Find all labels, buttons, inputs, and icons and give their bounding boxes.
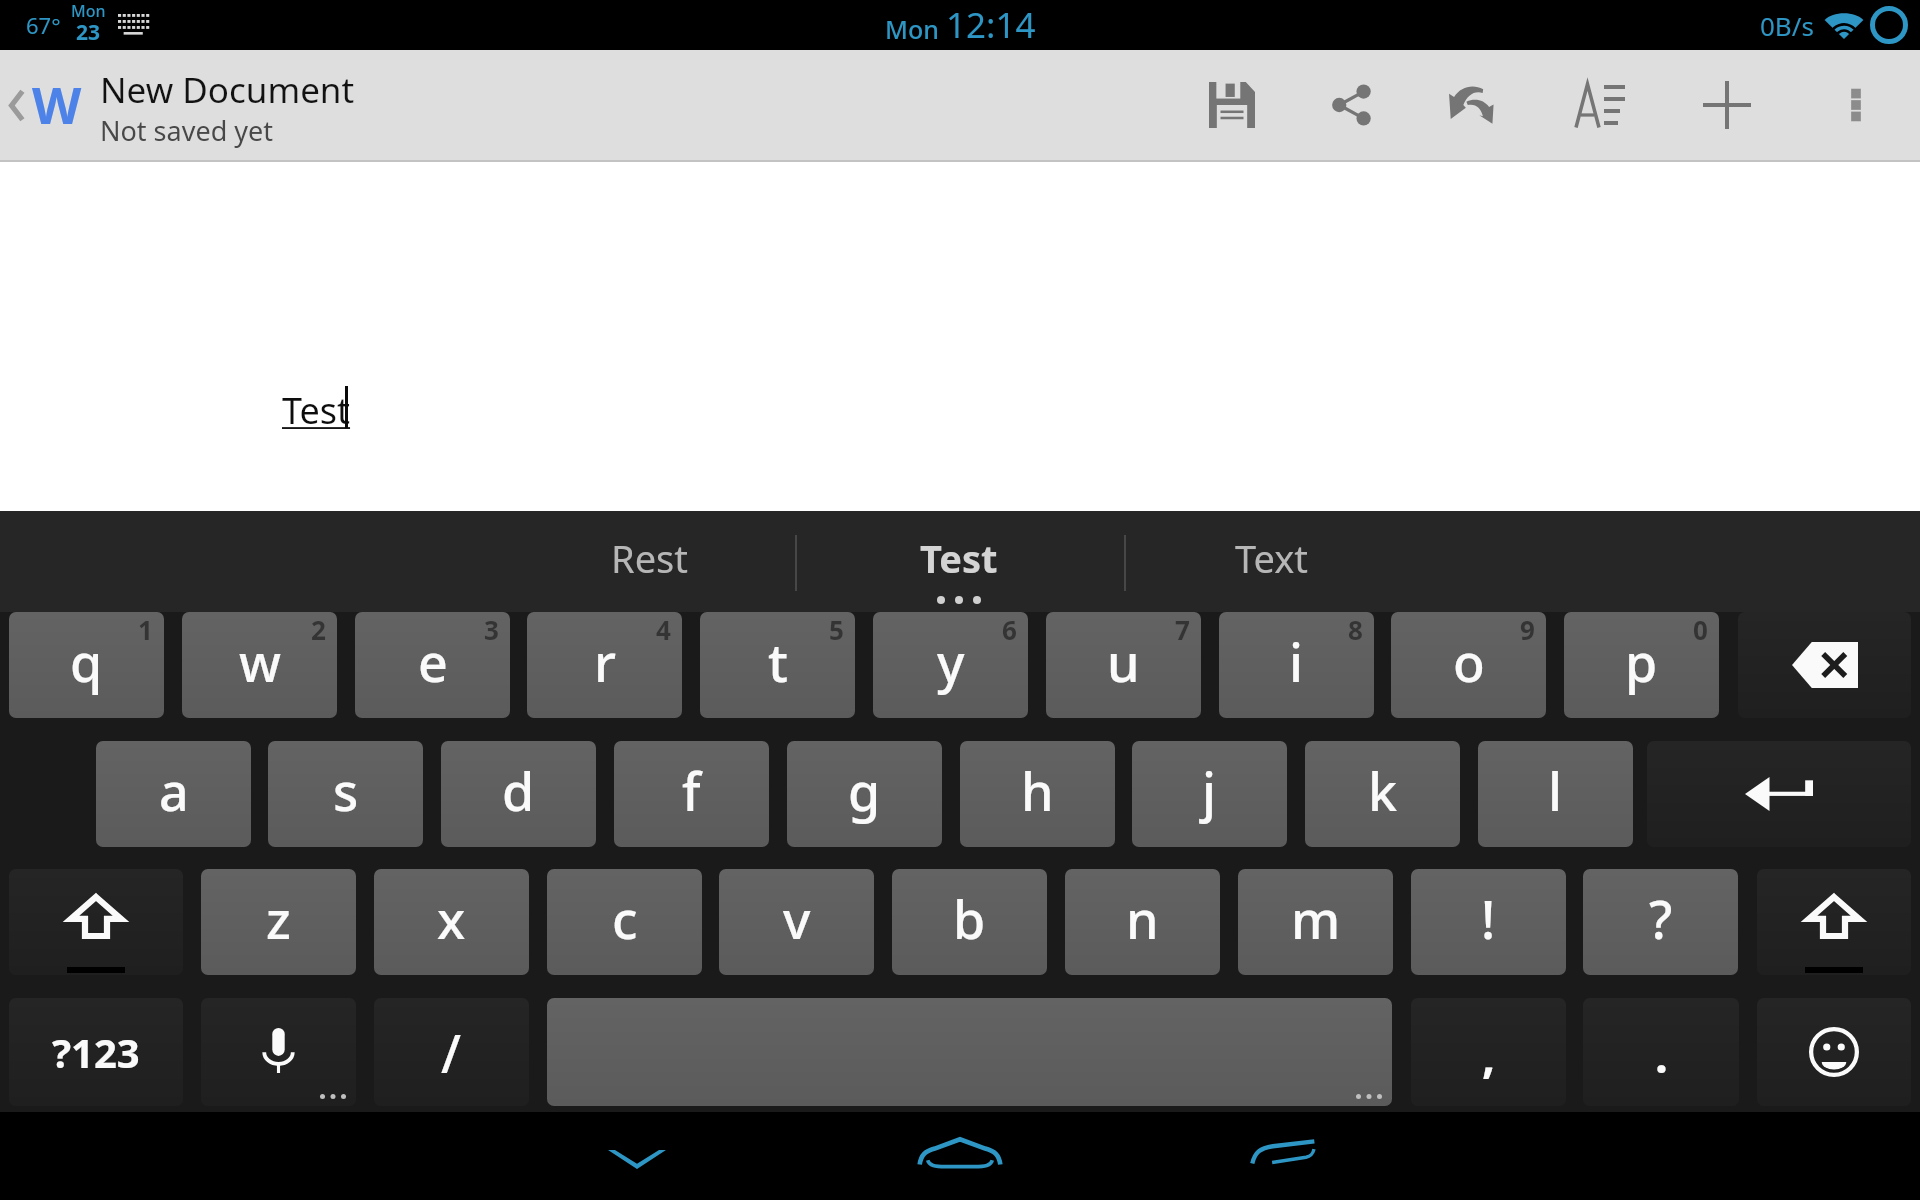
button[interactable]: Enter (1647, 741, 1911, 847)
button[interactable]: ! (1411, 869, 1566, 975)
other: Keyboard active (118, 14, 151, 37)
button[interactable]: Back (0, 50, 32, 160)
button[interactable]: h (960, 741, 1115, 847)
button[interactable]: b (892, 869, 1047, 975)
button[interactable]: a (96, 741, 251, 847)
staticText: ?123 (52, 1025, 140, 1079)
button[interactable]: Shift (9, 869, 183, 975)
button[interactable]: Text formatting (1540, 50, 1660, 160)
staticText: d (502, 755, 535, 826)
staticText: 3 (484, 612, 499, 647)
staticText: w (239, 626, 281, 697)
button[interactable]: Insert (1667, 50, 1787, 160)
staticText: i (1289, 626, 1304, 697)
button[interactable]: Space (547, 998, 1392, 1106)
button[interactable]: Recent apps (1203, 1108, 1363, 1196)
staticText: s (333, 755, 359, 826)
button[interactable]: Comma (1411, 998, 1566, 1106)
button[interactable]: g (787, 741, 942, 847)
button[interactable]: Undo (1412, 50, 1532, 160)
staticText: Test (282, 386, 351, 435)
button[interactable]: Document (32, 50, 82, 160)
button[interactable]: m (1238, 869, 1393, 975)
staticText: Mon (885, 12, 939, 46)
staticText: Mon (71, 0, 106, 22)
button[interactable]: Save (1172, 50, 1292, 160)
staticText: u (1107, 626, 1140, 697)
button[interactable]: c (547, 869, 702, 975)
button[interactable]: w (182, 612, 337, 718)
button[interactable]: Voice input (201, 998, 356, 1106)
staticText: l (1548, 755, 1563, 826)
button[interactable]: Slash (374, 998, 529, 1106)
button[interactable]: Rest (560, 511, 738, 612)
staticText: z (266, 883, 291, 954)
button[interactable]: q (9, 612, 164, 718)
button[interactable]: y (873, 612, 1028, 718)
staticText: f (682, 755, 701, 826)
staticText: x (437, 883, 466, 954)
button[interactable]: Share (1291, 50, 1411, 160)
button[interactable]: k (1305, 741, 1460, 847)
button[interactable]: n (1065, 869, 1220, 975)
button[interactable]: ? (1583, 869, 1738, 975)
button[interactable]: o (1391, 612, 1546, 718)
staticText: j (1202, 755, 1217, 826)
staticText: Text (1235, 532, 1308, 584)
staticText: 6 (1002, 612, 1017, 647)
staticText: 0B/s (1760, 8, 1814, 43)
staticText: q (70, 626, 103, 697)
button[interactable]: p (1564, 612, 1719, 718)
button[interactable]: Text (1182, 511, 1360, 612)
staticText: e (418, 626, 448, 697)
button[interactable]: Document editing area (0, 162, 1920, 511)
button[interactable]: Emoji (1757, 998, 1911, 1106)
staticText: / (441, 1017, 462, 1088)
staticText: . (1655, 1024, 1668, 1087)
staticText: ? (1649, 883, 1673, 954)
button[interactable]: v (719, 869, 874, 975)
button[interactable]: Hide keyboard (557, 1115, 717, 1200)
staticText: 9 (1520, 612, 1535, 647)
button[interactable]: r (527, 612, 682, 718)
staticText: 23 (76, 18, 101, 46)
button[interactable]: s (268, 741, 423, 847)
other: Battery (1870, 6, 1908, 44)
staticText: g (848, 755, 881, 826)
staticText: Rest (611, 532, 688, 584)
staticText: a (159, 755, 189, 826)
other: Wi-Fi (1824, 10, 1864, 40)
button[interactable]: Period (1583, 998, 1739, 1106)
button[interactable]: Shift (1757, 869, 1911, 975)
staticText: 0 (1693, 612, 1708, 647)
button[interactable]: t (700, 612, 855, 718)
staticText: r (594, 626, 616, 697)
staticText: W (32, 69, 82, 138)
button[interactable]: x (374, 869, 529, 975)
button[interactable]: i (1219, 612, 1374, 718)
staticText: , (1482, 1024, 1496, 1087)
button[interactable]: Test (870, 511, 1048, 612)
button[interactable]: f (614, 741, 769, 847)
button[interactable]: New Document (100, 50, 400, 160)
staticText: c (612, 883, 638, 954)
staticText: 67° (26, 10, 61, 40)
staticText: 5 (829, 612, 844, 647)
staticText: n (1126, 883, 1159, 954)
button[interactable]: j (1132, 741, 1287, 847)
button[interactable]: u (1046, 612, 1201, 718)
button[interactable]: Symbols (9, 998, 183, 1106)
staticText: 1 (138, 612, 153, 647)
button[interactable]: z (201, 869, 356, 975)
staticText: k (1368, 755, 1398, 826)
button[interactable]: Backspace (1738, 612, 1911, 718)
button[interactable]: e (355, 612, 510, 718)
staticText: o (1453, 626, 1485, 697)
button[interactable]: d (441, 741, 596, 847)
button[interactable]: l (1478, 741, 1633, 847)
button[interactable]: Home (875, 1107, 1045, 1195)
staticText: t (768, 626, 788, 697)
staticText: b (953, 883, 986, 954)
staticText: 2 (311, 612, 326, 647)
button[interactable]: More options (1796, 50, 1916, 160)
